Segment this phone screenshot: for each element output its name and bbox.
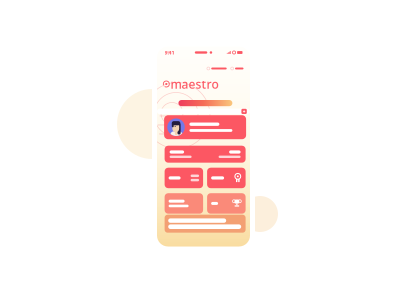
- button[interactable]: [165, 168, 203, 188]
- button[interactable]: Add: [241, 109, 247, 114]
- button[interactable]: [165, 215, 246, 233]
- button[interactable]: [207, 168, 246, 188]
- button[interactable]: [164, 115, 246, 139]
- staticText: maestro: [171, 76, 219, 92]
- staticText: 9:41: [164, 49, 174, 56]
- button[interactable]: [165, 146, 246, 163]
- button[interactable]: [207, 193, 246, 214]
- button[interactable]: [165, 193, 203, 214]
